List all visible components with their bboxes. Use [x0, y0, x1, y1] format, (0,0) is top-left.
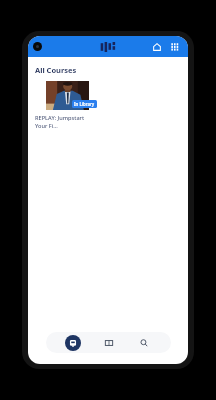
button[interactable]: Search	[136, 335, 152, 351]
staticText: REPLAY: Jumpstart	[35, 114, 85, 122]
staticText: Your Fi...	[35, 122, 58, 130]
button[interactable]: Home	[151, 41, 163, 53]
staticText: All Courses	[35, 65, 77, 75]
button[interactable]: My Courses	[65, 335, 81, 351]
staticText: In Library	[74, 101, 95, 107]
button[interactable]: In Library	[35, 81, 99, 130]
button[interactable]: Apps	[169, 41, 181, 53]
button[interactable]: Library	[101, 335, 117, 351]
